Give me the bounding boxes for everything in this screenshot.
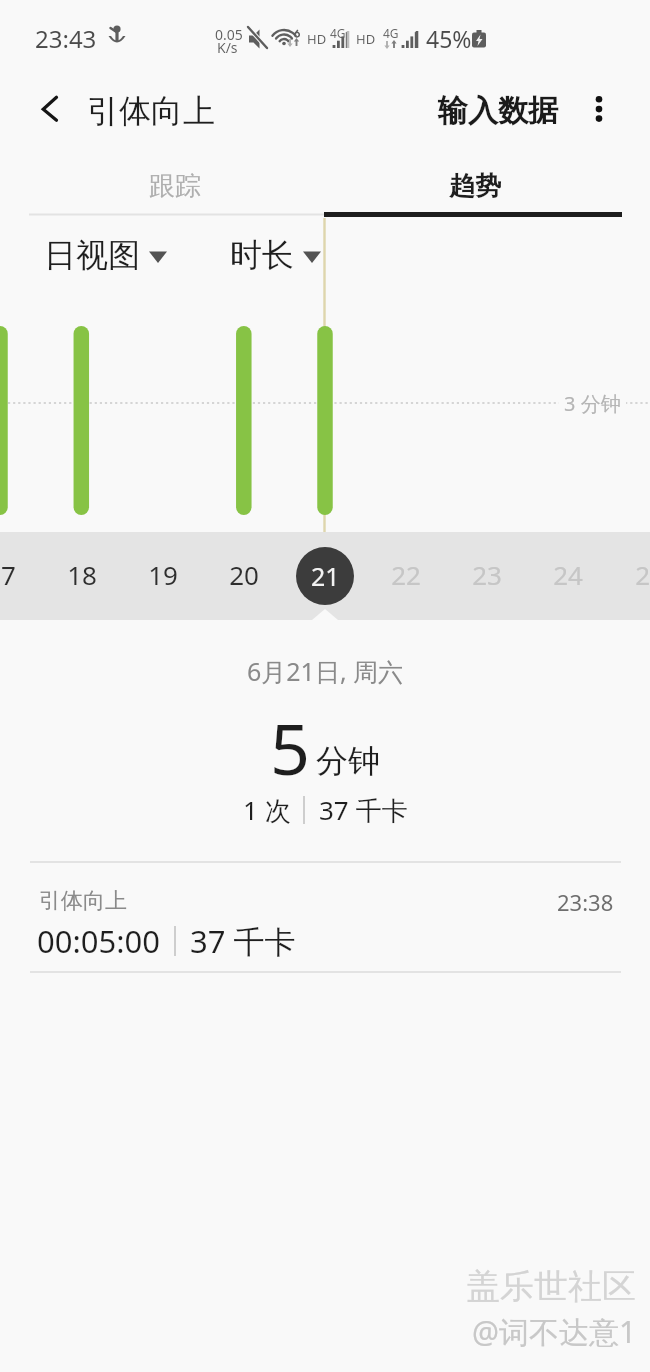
button[interactable]: June 21, selected day: [296, 547, 354, 605]
staticText: 17: [0, 557, 16, 592]
staticText: 跟踪: [149, 170, 201, 203]
staticText: 22: [391, 557, 421, 592]
button[interactable]: 跟踪: [25, 151, 325, 221]
staticText: K/s: [217, 38, 238, 57]
staticText: 3 分钟: [564, 390, 621, 417]
staticText: HD: [356, 30, 376, 48]
staticText: 21: [311, 559, 340, 593]
staticText: 23:43: [35, 22, 97, 55]
staticText: 19: [148, 557, 178, 592]
staticText: 23:38: [557, 887, 614, 917]
staticText: 0.05: [215, 25, 243, 44]
staticText: 引体向上: [39, 887, 127, 915]
button[interactable]: Back: [22, 79, 66, 123]
staticText: 18: [67, 557, 97, 592]
staticText: 00:05:00: [37, 920, 161, 962]
staticText: 45%: [426, 23, 472, 54]
staticText: 37 千卡: [319, 792, 408, 828]
staticText: 6月21日, 周六: [247, 654, 404, 688]
staticText: 4G: [383, 25, 399, 41]
button[interactable]: More options: [577, 79, 621, 123]
button[interactable]: 趋势: [325, 151, 625, 221]
button[interactable]: 日视图: [36, 229, 175, 281]
staticText: 37 千卡: [190, 920, 296, 962]
staticText: 趋势: [449, 170, 501, 203]
staticText: 盖乐世社区: [466, 1265, 636, 1308]
button[interactable]: 引体向上: [0, 860, 650, 970]
button[interactable]: 输入数据: [430, 86, 566, 136]
staticText: 1 次: [243, 792, 291, 828]
staticText: 时长: [230, 235, 294, 275]
staticText: 25: [635, 557, 650, 592]
staticText: 20: [229, 557, 259, 592]
staticText: 24: [553, 557, 583, 592]
staticText: 5: [270, 700, 311, 795]
staticText: 23: [472, 557, 502, 592]
staticText: @词不达意1: [472, 1311, 637, 1352]
staticText: 输入数据: [438, 92, 558, 130]
staticText: HD: [307, 30, 327, 48]
staticText: 引体向上: [87, 91, 215, 131]
staticText: 4G: [330, 25, 346, 41]
staticText: 日视图: [44, 235, 140, 275]
staticText: 分钟: [316, 741, 380, 781]
button[interactable]: 时长: [222, 229, 329, 281]
